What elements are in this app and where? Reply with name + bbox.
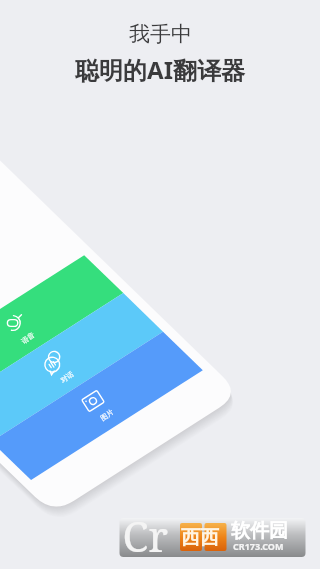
staticText: 我手中 (129, 21, 192, 47)
staticText: 聪明的AI翻译器 (75, 53, 245, 86)
